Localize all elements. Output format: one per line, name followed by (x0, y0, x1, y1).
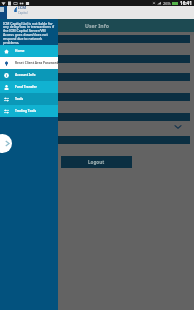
button[interactable]: Account Info (0, 69, 58, 81)
staticText: Home (15, 49, 25, 53)
button[interactable] (0, 113, 190, 121)
staticText: Account Info (15, 73, 36, 77)
button[interactable] (0, 73, 190, 81)
button[interactable]: Fund Transfer (0, 81, 58, 93)
staticText: Tools (15, 97, 24, 101)
staticText: Reset Client Area Password (15, 61, 58, 65)
button[interactable]: Tools (0, 93, 58, 105)
staticText: Fund Transfer (15, 85, 37, 89)
button[interactable]: Logout (61, 156, 132, 168)
staticText: ICM Capital Ltd is not liable for any de… (3, 21, 55, 45)
button[interactable] (0, 136, 190, 144)
button[interactable]: Select country (0, 121, 194, 136)
button[interactable]: User Info (0, 19, 194, 32)
button[interactable]: Reset Client Area Password (0, 57, 58, 69)
staticText: 26% (163, 1, 171, 6)
staticText: Trading Tools (15, 109, 36, 113)
button[interactable]: Open navigation drawer (0, 134, 12, 153)
button[interactable] (0, 55, 190, 63)
staticText: User Info (85, 22, 109, 29)
button[interactable]: Home (0, 45, 58, 57)
staticText: 16:41 (180, 0, 192, 6)
staticText: ICM (18, 5, 27, 11)
button[interactable] (0, 35, 190, 43)
button[interactable] (0, 93, 190, 101)
button[interactable]: Trading Tools (0, 105, 58, 117)
staticText: Logout (88, 159, 105, 165)
staticText: Capital (18, 11, 28, 15)
button[interactable]: App icon (0, 0, 7, 19)
